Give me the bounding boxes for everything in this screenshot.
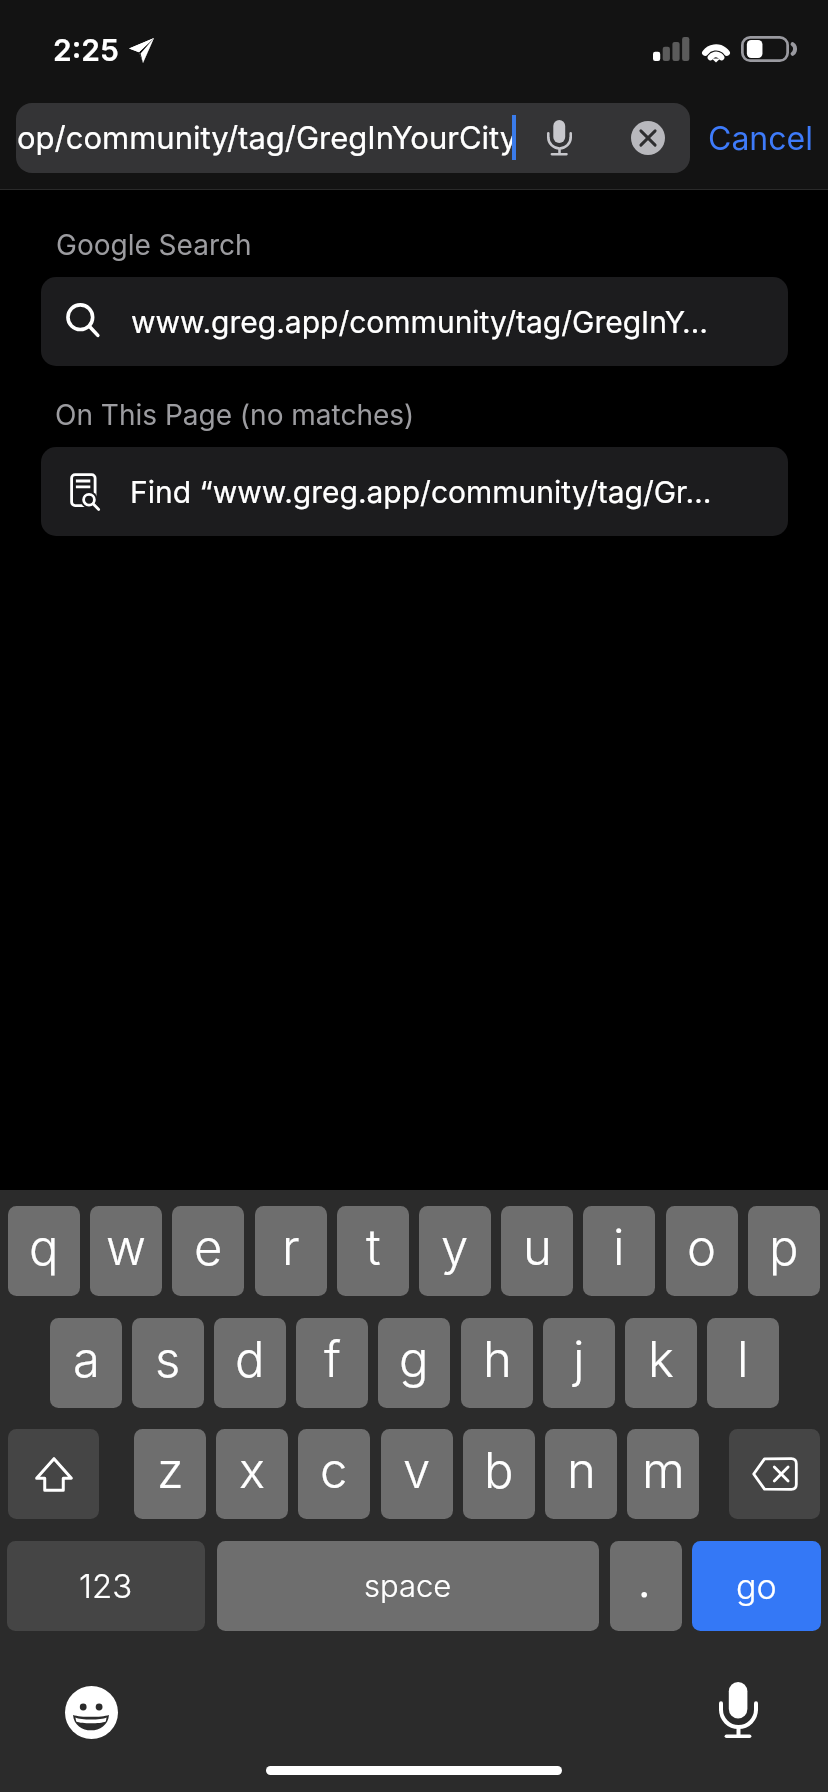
staticText: j bbox=[573, 1330, 585, 1389]
staticText: l bbox=[737, 1330, 749, 1389]
staticText: 2:25 bbox=[53, 32, 119, 68]
staticText: go bbox=[736, 1566, 777, 1607]
staticText: c bbox=[320, 1441, 348, 1500]
button[interactable]: u bbox=[501, 1206, 573, 1296]
staticText: n bbox=[567, 1441, 596, 1500]
staticText: www.greg.app/community/tag/GregInY… bbox=[131, 304, 709, 340]
staticText: h bbox=[483, 1330, 512, 1389]
button[interactable]: Cancel bbox=[698, 103, 823, 173]
staticText: a bbox=[73, 1330, 100, 1389]
button[interactable]: www.greg.app/community/tag/GregInY… bbox=[41, 277, 788, 366]
staticText: e bbox=[194, 1218, 223, 1277]
staticText: r bbox=[282, 1218, 300, 1277]
staticText: Google Search bbox=[56, 228, 252, 262]
button[interactable]: Find “www.greg.app/community/tag/Gr… bbox=[41, 447, 788, 536]
button[interactable]: m bbox=[627, 1429, 699, 1519]
button[interactable]: i bbox=[583, 1206, 655, 1296]
button[interactable]: l bbox=[707, 1318, 779, 1408]
staticText: b bbox=[484, 1441, 514, 1500]
staticText: d bbox=[235, 1330, 265, 1389]
button[interactable]: b bbox=[463, 1429, 535, 1519]
button[interactable]: y bbox=[419, 1206, 491, 1296]
button[interactable]: Period bbox=[610, 1541, 682, 1631]
staticText: p bbox=[769, 1218, 799, 1277]
staticText: space bbox=[364, 1567, 452, 1605]
button[interactable]: x bbox=[216, 1429, 288, 1519]
button[interactable]: Dictation bbox=[705, 1668, 772, 1753]
button[interactable]: n bbox=[545, 1429, 617, 1519]
button[interactable]: j bbox=[543, 1318, 615, 1408]
staticText: Find “www.greg.app/community/tag/Gr… bbox=[130, 474, 712, 510]
staticText: i bbox=[613, 1218, 625, 1277]
button[interactable]: Shift bbox=[8, 1429, 99, 1519]
button[interactable]: 123 bbox=[7, 1541, 205, 1631]
staticText: op/community/tag/GregInYourCity bbox=[17, 119, 513, 157]
button[interactable]: d bbox=[214, 1318, 286, 1408]
button[interactable]: p bbox=[748, 1206, 820, 1296]
button[interactable]: op/community/tag/GregInYourCity bbox=[16, 103, 690, 173]
button[interactable]: v bbox=[381, 1429, 453, 1519]
staticText: 123 bbox=[79, 1566, 133, 1606]
staticText: o bbox=[687, 1218, 717, 1277]
button[interactable]: t bbox=[337, 1206, 409, 1296]
staticText: g bbox=[399, 1330, 429, 1389]
button[interactable]: w bbox=[90, 1206, 162, 1296]
button[interactable]: q bbox=[8, 1206, 80, 1296]
staticText: q bbox=[29, 1218, 59, 1277]
staticText: y bbox=[441, 1218, 469, 1277]
staticText: m bbox=[642, 1441, 685, 1500]
button[interactable]: a bbox=[50, 1318, 122, 1408]
button[interactable]: space bbox=[217, 1541, 599, 1631]
staticText: z bbox=[157, 1441, 184, 1500]
button[interactable]: go bbox=[692, 1541, 821, 1631]
staticText: w bbox=[106, 1218, 146, 1277]
button[interactable]: r bbox=[255, 1206, 327, 1296]
staticText: t bbox=[366, 1218, 381, 1277]
button[interactable]: c bbox=[298, 1429, 370, 1519]
button[interactable]: Voice search bbox=[535, 103, 583, 173]
staticText: k bbox=[648, 1330, 674, 1389]
staticText: On This Page (no matches) bbox=[55, 398, 415, 432]
button[interactable]: f bbox=[296, 1318, 368, 1408]
staticText: x bbox=[239, 1441, 266, 1500]
button[interactable]: Clear text bbox=[620, 110, 676, 166]
button[interactable]: z bbox=[134, 1429, 206, 1519]
staticText: v bbox=[403, 1441, 431, 1500]
button[interactable]: Backspace bbox=[729, 1429, 820, 1519]
button[interactable]: Emoji keyboard bbox=[51, 1672, 132, 1753]
button[interactable]: o bbox=[666, 1206, 738, 1296]
button[interactable]: e bbox=[172, 1206, 244, 1296]
staticText: s bbox=[155, 1330, 181, 1389]
button[interactable]: s bbox=[132, 1318, 204, 1408]
staticText: f bbox=[324, 1330, 341, 1389]
staticText: Cancel bbox=[708, 119, 813, 158]
button[interactable]: g bbox=[378, 1318, 450, 1408]
staticText: u bbox=[523, 1218, 552, 1277]
button[interactable]: k bbox=[625, 1318, 697, 1408]
button[interactable]: h bbox=[461, 1318, 533, 1408]
